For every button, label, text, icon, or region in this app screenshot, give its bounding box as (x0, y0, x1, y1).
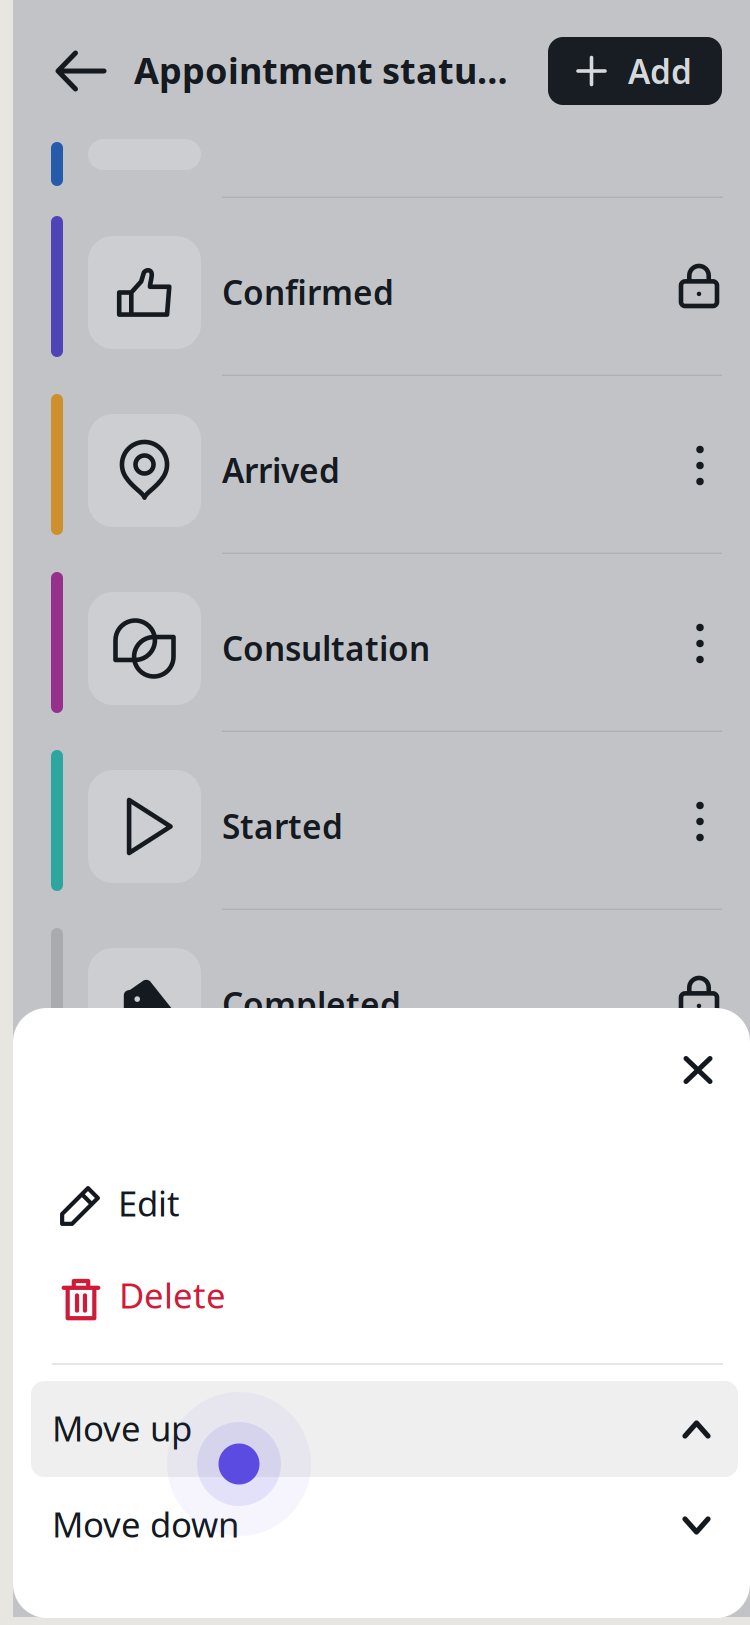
staticText: Confirmed (222, 270, 394, 314)
button[interactable]: Started (13, 732, 750, 910)
staticText: Consultation (222, 626, 430, 670)
button[interactable]: Arrived (13, 376, 750, 554)
button[interactable]: Delete (13, 1253, 750, 1349)
button[interactable]: Completed (13, 910, 750, 1088)
button[interactable]: Back (36, 26, 126, 116)
button[interactable]: Close (656, 1028, 740, 1112)
staticText: Started (222, 804, 343, 848)
staticText: Move up (52, 1405, 192, 1451)
staticText: Appointment statu… (134, 46, 508, 94)
button[interactable]: Edit (13, 1158, 750, 1254)
staticText: Delete (119, 1272, 226, 1318)
staticText: Add (628, 49, 692, 93)
button[interactable]: Confirmed (13, 198, 750, 376)
button[interactable]: Add (548, 37, 722, 105)
staticText: Completed (222, 982, 401, 1026)
staticText: Arrived (222, 448, 340, 492)
staticText: Edit (118, 1180, 180, 1226)
button[interactable]: Move down (31, 1477, 738, 1573)
button[interactable]: Consultation (13, 554, 750, 732)
button[interactable]: Move up (31, 1381, 738, 1477)
staticText: Move down (52, 1501, 239, 1547)
